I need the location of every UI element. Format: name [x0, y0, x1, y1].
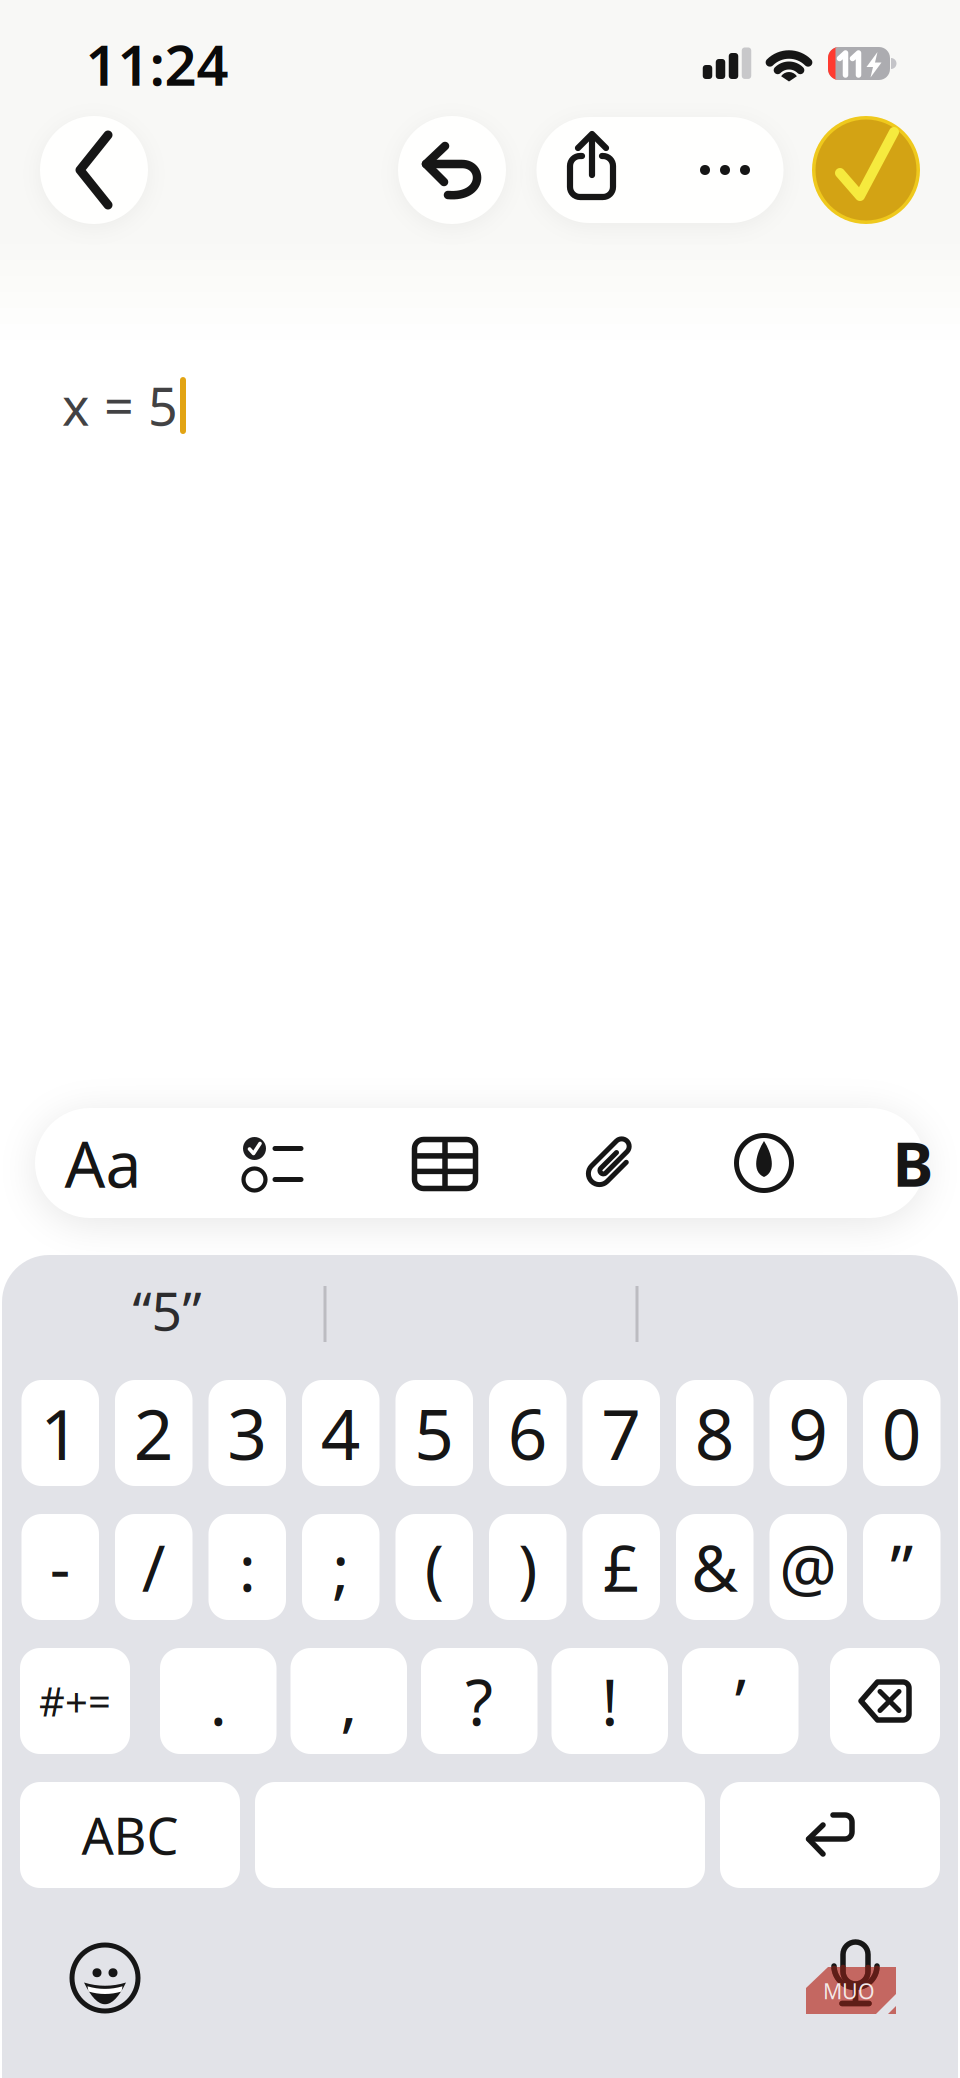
button[interactable]: .	[160, 1648, 276, 1754]
staticText: ”	[890, 1524, 913, 1609]
button[interactable]: Emoji	[71, 1944, 139, 2012]
staticText: !	[601, 1658, 618, 1743]
button[interactable]: 5	[395, 1380, 473, 1486]
staticText: 2	[134, 1387, 174, 1479]
button[interactable]: Share	[560, 125, 624, 217]
staticText: ?	[465, 1658, 493, 1743]
button[interactable]: Sketch	[736, 1135, 791, 1190]
button[interactable]: ’	[682, 1648, 798, 1754]
staticText: /	[142, 1524, 166, 1609]
staticText: 7	[601, 1387, 641, 1479]
button[interactable]: ”	[863, 1514, 940, 1620]
staticText: 9	[788, 1387, 828, 1479]
button[interactable]: Back	[40, 116, 148, 224]
staticText: @	[779, 1524, 837, 1609]
button[interactable]: 8	[676, 1380, 753, 1486]
staticText: #+=	[39, 1674, 111, 1727]
staticText: B	[892, 1122, 933, 1204]
button[interactable]: Table	[414, 1139, 475, 1188]
staticText: :	[239, 1524, 256, 1609]
button[interactable]: Text style	[48, 1113, 158, 1213]
staticText: 8	[695, 1387, 735, 1479]
staticText: 5	[414, 1387, 454, 1479]
button[interactable]: 9	[769, 1380, 847, 1486]
button[interactable]: #+=	[20, 1648, 130, 1754]
button[interactable]: &	[676, 1514, 753, 1620]
staticText: “5”	[132, 1275, 201, 1345]
button[interactable]: (	[395, 1514, 473, 1620]
button[interactable]: 4	[302, 1380, 379, 1486]
staticText: )	[518, 1524, 537, 1609]
button[interactable]: 1	[21, 1380, 99, 1486]
staticText: -	[50, 1524, 71, 1609]
button[interactable]: )	[489, 1514, 566, 1620]
staticText: 11:24	[85, 27, 228, 101]
button[interactable]: Done	[812, 116, 920, 224]
button[interactable]: 3	[208, 1380, 286, 1486]
staticText: 6	[508, 1387, 548, 1479]
button[interactable]: Undo	[398, 116, 506, 224]
button[interactable]: Attach file	[577, 1130, 643, 1196]
button[interactable]: !	[551, 1648, 668, 1754]
staticText: 3	[227, 1387, 267, 1479]
staticText: .	[210, 1658, 227, 1743]
staticText: (	[425, 1524, 444, 1609]
button[interactable]: 7	[582, 1380, 660, 1486]
button[interactable]: 0	[863, 1380, 940, 1486]
button[interactable]: 6	[489, 1380, 566, 1486]
staticText: ;	[332, 1524, 349, 1609]
button[interactable]: :	[208, 1514, 286, 1620]
button[interactable]: Bold	[888, 1123, 938, 1203]
staticText: x = 5	[62, 371, 178, 440]
button[interactable]: -	[21, 1514, 99, 1620]
button[interactable]: ;	[302, 1514, 379, 1620]
button[interactable]: Return	[720, 1782, 940, 1888]
staticText: Aa	[64, 1120, 141, 1205]
staticText: 1	[40, 1387, 80, 1479]
button[interactable]: ?	[421, 1648, 537, 1754]
button[interactable]: ,	[290, 1648, 407, 1754]
button[interactable]: “5”	[42, 1275, 292, 1345]
button[interactable]: £	[582, 1514, 660, 1620]
button[interactable]: More	[685, 130, 765, 210]
button[interactable]: ABC	[20, 1782, 240, 1888]
button[interactable]: Dictate	[827, 1941, 884, 2011]
button[interactable]: @	[769, 1514, 847, 1620]
button[interactable]: 2	[115, 1380, 192, 1486]
button[interactable]: Checklist	[241, 1137, 303, 1190]
staticText: &	[691, 1524, 738, 1609]
staticText: ABC	[81, 1801, 178, 1869]
staticText: ’	[735, 1658, 746, 1743]
staticText: 4	[321, 1387, 361, 1479]
staticText: ,	[340, 1658, 357, 1743]
button[interactable]: Delete	[830, 1648, 940, 1754]
staticText: MUO	[823, 1977, 875, 2005]
staticText: £	[603, 1524, 640, 1609]
staticText: 0	[882, 1387, 922, 1479]
button[interactable]: /	[115, 1514, 192, 1620]
